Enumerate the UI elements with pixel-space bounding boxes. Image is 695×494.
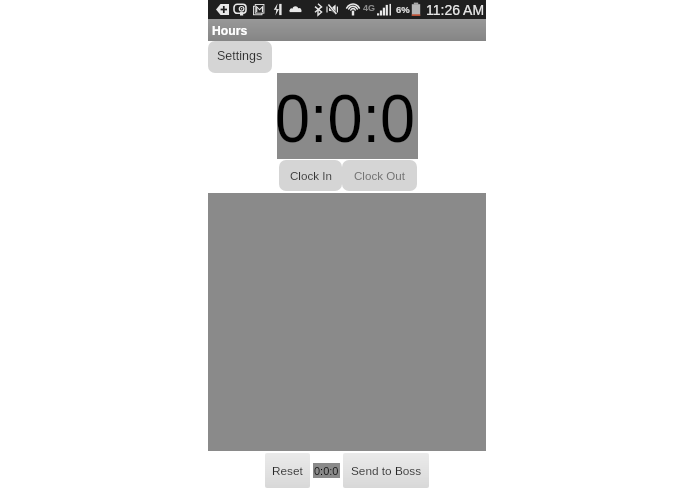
button[interactable]: Reset <box>265 453 310 488</box>
staticText: 6% <box>396 4 410 15</box>
staticText: 11:26 AM <box>426 2 485 18</box>
staticText: Send to Boss <box>351 464 422 477</box>
other: Elapsed time 0:0:0 <box>313 463 340 478</box>
button[interactable]: Clock In <box>279 160 342 191</box>
staticText: Hours <box>212 24 248 38</box>
staticText: Settings <box>217 49 263 63</box>
staticText: Clock In <box>290 169 332 182</box>
staticText: 4G <box>363 3 376 13</box>
button[interactable]: Send to Boss <box>343 453 429 488</box>
button[interactable]: Settings <box>208 41 272 73</box>
staticText: Reset <box>272 464 303 477</box>
staticText: 0:0:0 <box>314 465 339 477</box>
staticText: 0:0:0 <box>275 80 416 156</box>
button[interactable]: Clock Out <box>342 160 417 191</box>
staticText: Clock Out <box>354 169 405 182</box>
